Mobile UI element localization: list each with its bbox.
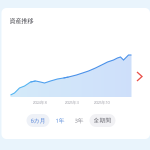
staticText: 2025年3 bbox=[64, 99, 78, 105]
staticText: 1年 bbox=[55, 116, 64, 125]
staticText: 6カ月 bbox=[30, 116, 45, 125]
button[interactable]: 詳細を見る bbox=[134, 69, 145, 84]
staticText: 2025年10 bbox=[93, 99, 109, 105]
button[interactable]: 3年 bbox=[70, 114, 87, 127]
staticText: 3年 bbox=[74, 116, 83, 125]
staticText: 2024年8 bbox=[32, 99, 46, 105]
staticText: 資産推移 bbox=[9, 17, 33, 25]
button[interactable]: 全期間 bbox=[89, 114, 115, 127]
button[interactable]: 1年 bbox=[51, 114, 68, 127]
button[interactable]: 6カ月 bbox=[26, 114, 49, 127]
staticText: 全期間 bbox=[93, 117, 111, 124]
